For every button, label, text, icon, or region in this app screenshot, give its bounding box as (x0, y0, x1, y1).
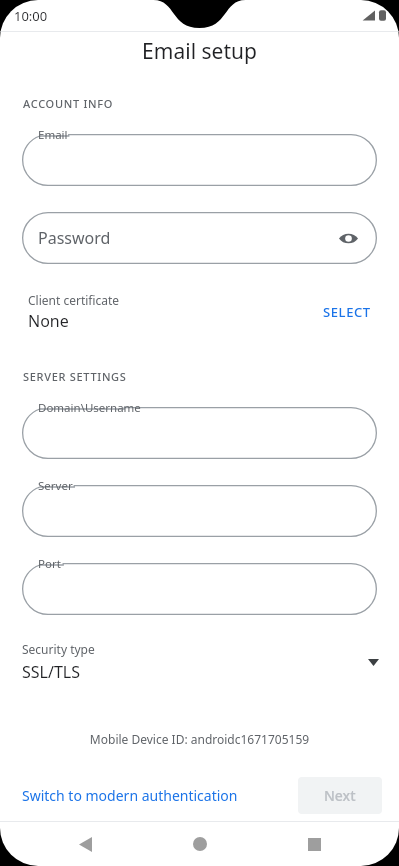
staticText: Domain\Username (38, 400, 141, 416)
staticText: Password (38, 227, 111, 249)
staticText: SSL/TLS (22, 661, 80, 683)
button[interactable]: Email (22, 134, 377, 186)
staticText: SELECT (323, 303, 371, 321)
staticText: Email (38, 127, 68, 143)
button[interactable]: Port (22, 563, 377, 615)
button[interactable]: Password (22, 212, 377, 264)
button[interactable]: Recent apps (285, 822, 343, 866)
staticText: Mobile Device ID: androidc1671705159 (0, 731, 399, 747)
button[interactable]: Server (22, 485, 377, 537)
button[interactable]: Security type (0, 641, 399, 683)
button[interactable]: SELECT (313, 297, 381, 327)
staticText: Server (38, 478, 73, 494)
button[interactable]: Domain\Username (22, 407, 377, 459)
staticText: None (28, 310, 69, 332)
button[interactable]: Home (171, 822, 229, 866)
staticText: Port (38, 556, 61, 572)
button[interactable]: Next (298, 777, 382, 814)
button[interactable]: Client certificate (0, 288, 399, 336)
staticText: Switch to modern authentication (22, 786, 238, 805)
staticText: Email setup (142, 37, 257, 66)
staticText: Client certificate (28, 292, 120, 308)
staticText: Next (324, 786, 356, 805)
button[interactable]: Switch to modern authentication (22, 778, 238, 813)
button[interactable]: Back (56, 822, 114, 866)
staticText: Security type (22, 641, 95, 657)
staticText: 10:00 (14, 7, 48, 25)
staticText: ACCOUNT INFO (23, 96, 114, 111)
button[interactable]: Show password (333, 223, 363, 253)
staticText: SERVER SETTINGS (23, 369, 127, 384)
